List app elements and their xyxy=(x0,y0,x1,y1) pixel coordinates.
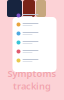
staticText: Symptoms xyxy=(7,67,56,80)
staticText: tracking xyxy=(13,80,51,92)
